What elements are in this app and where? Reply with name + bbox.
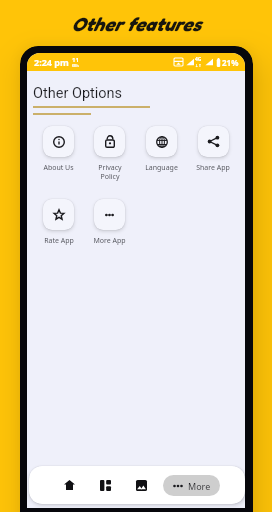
button[interactable]: About Us (33, 126, 84, 173)
button[interactable]: Home (58, 474, 80, 496)
staticText: Other features (71, 12, 201, 35)
staticText: Language (145, 163, 178, 173)
staticText: Privacy Policy (98, 163, 122, 181)
staticText: Share App (196, 163, 230, 173)
button[interactable]: Privacy Policy (84, 126, 135, 181)
button[interactable]: Share App (187, 126, 239, 173)
staticText: About Us (43, 163, 74, 173)
staticText: 11 (72, 56, 79, 64)
button[interactable]: More (163, 475, 220, 496)
staticText: Rate App (44, 236, 74, 246)
button[interactable]: Rate App (33, 199, 84, 246)
button[interactable]: Gallery (130, 474, 152, 496)
staticText: More App (93, 236, 126, 246)
staticText: Other Options (33, 85, 123, 102)
staticText: KB/s (72, 64, 79, 68)
button[interactable]: Language (135, 126, 187, 173)
button[interactable]: More App (84, 199, 135, 246)
staticText: More (188, 480, 211, 492)
button[interactable]: Dashboard (94, 474, 116, 496)
staticText: 2:24 pm (34, 56, 69, 68)
staticText: 21% (222, 57, 239, 68)
staticText: ↓↑ (195, 63, 202, 68)
staticText: 4G (195, 56, 202, 63)
